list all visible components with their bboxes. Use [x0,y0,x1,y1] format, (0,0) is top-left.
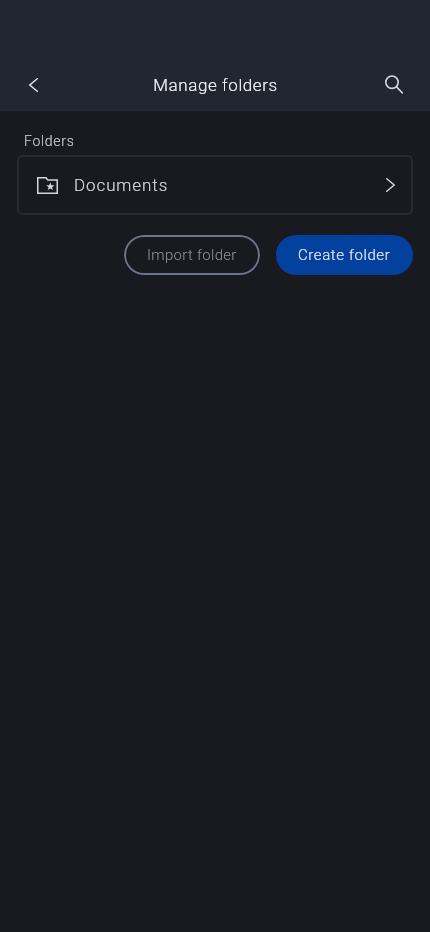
button[interactable]: Documents [17,155,413,215]
staticText: Import folder [147,246,237,264]
button[interactable]: Back [9,61,57,109]
button[interactable]: Create folder [276,235,413,275]
button[interactable]: Import folder [124,235,260,275]
staticText: Folders [24,133,75,149]
staticText: Documents [74,175,169,195]
staticText: Create folder [298,246,391,264]
staticText: Manage folders [153,75,278,95]
button[interactable]: Search [370,61,418,109]
